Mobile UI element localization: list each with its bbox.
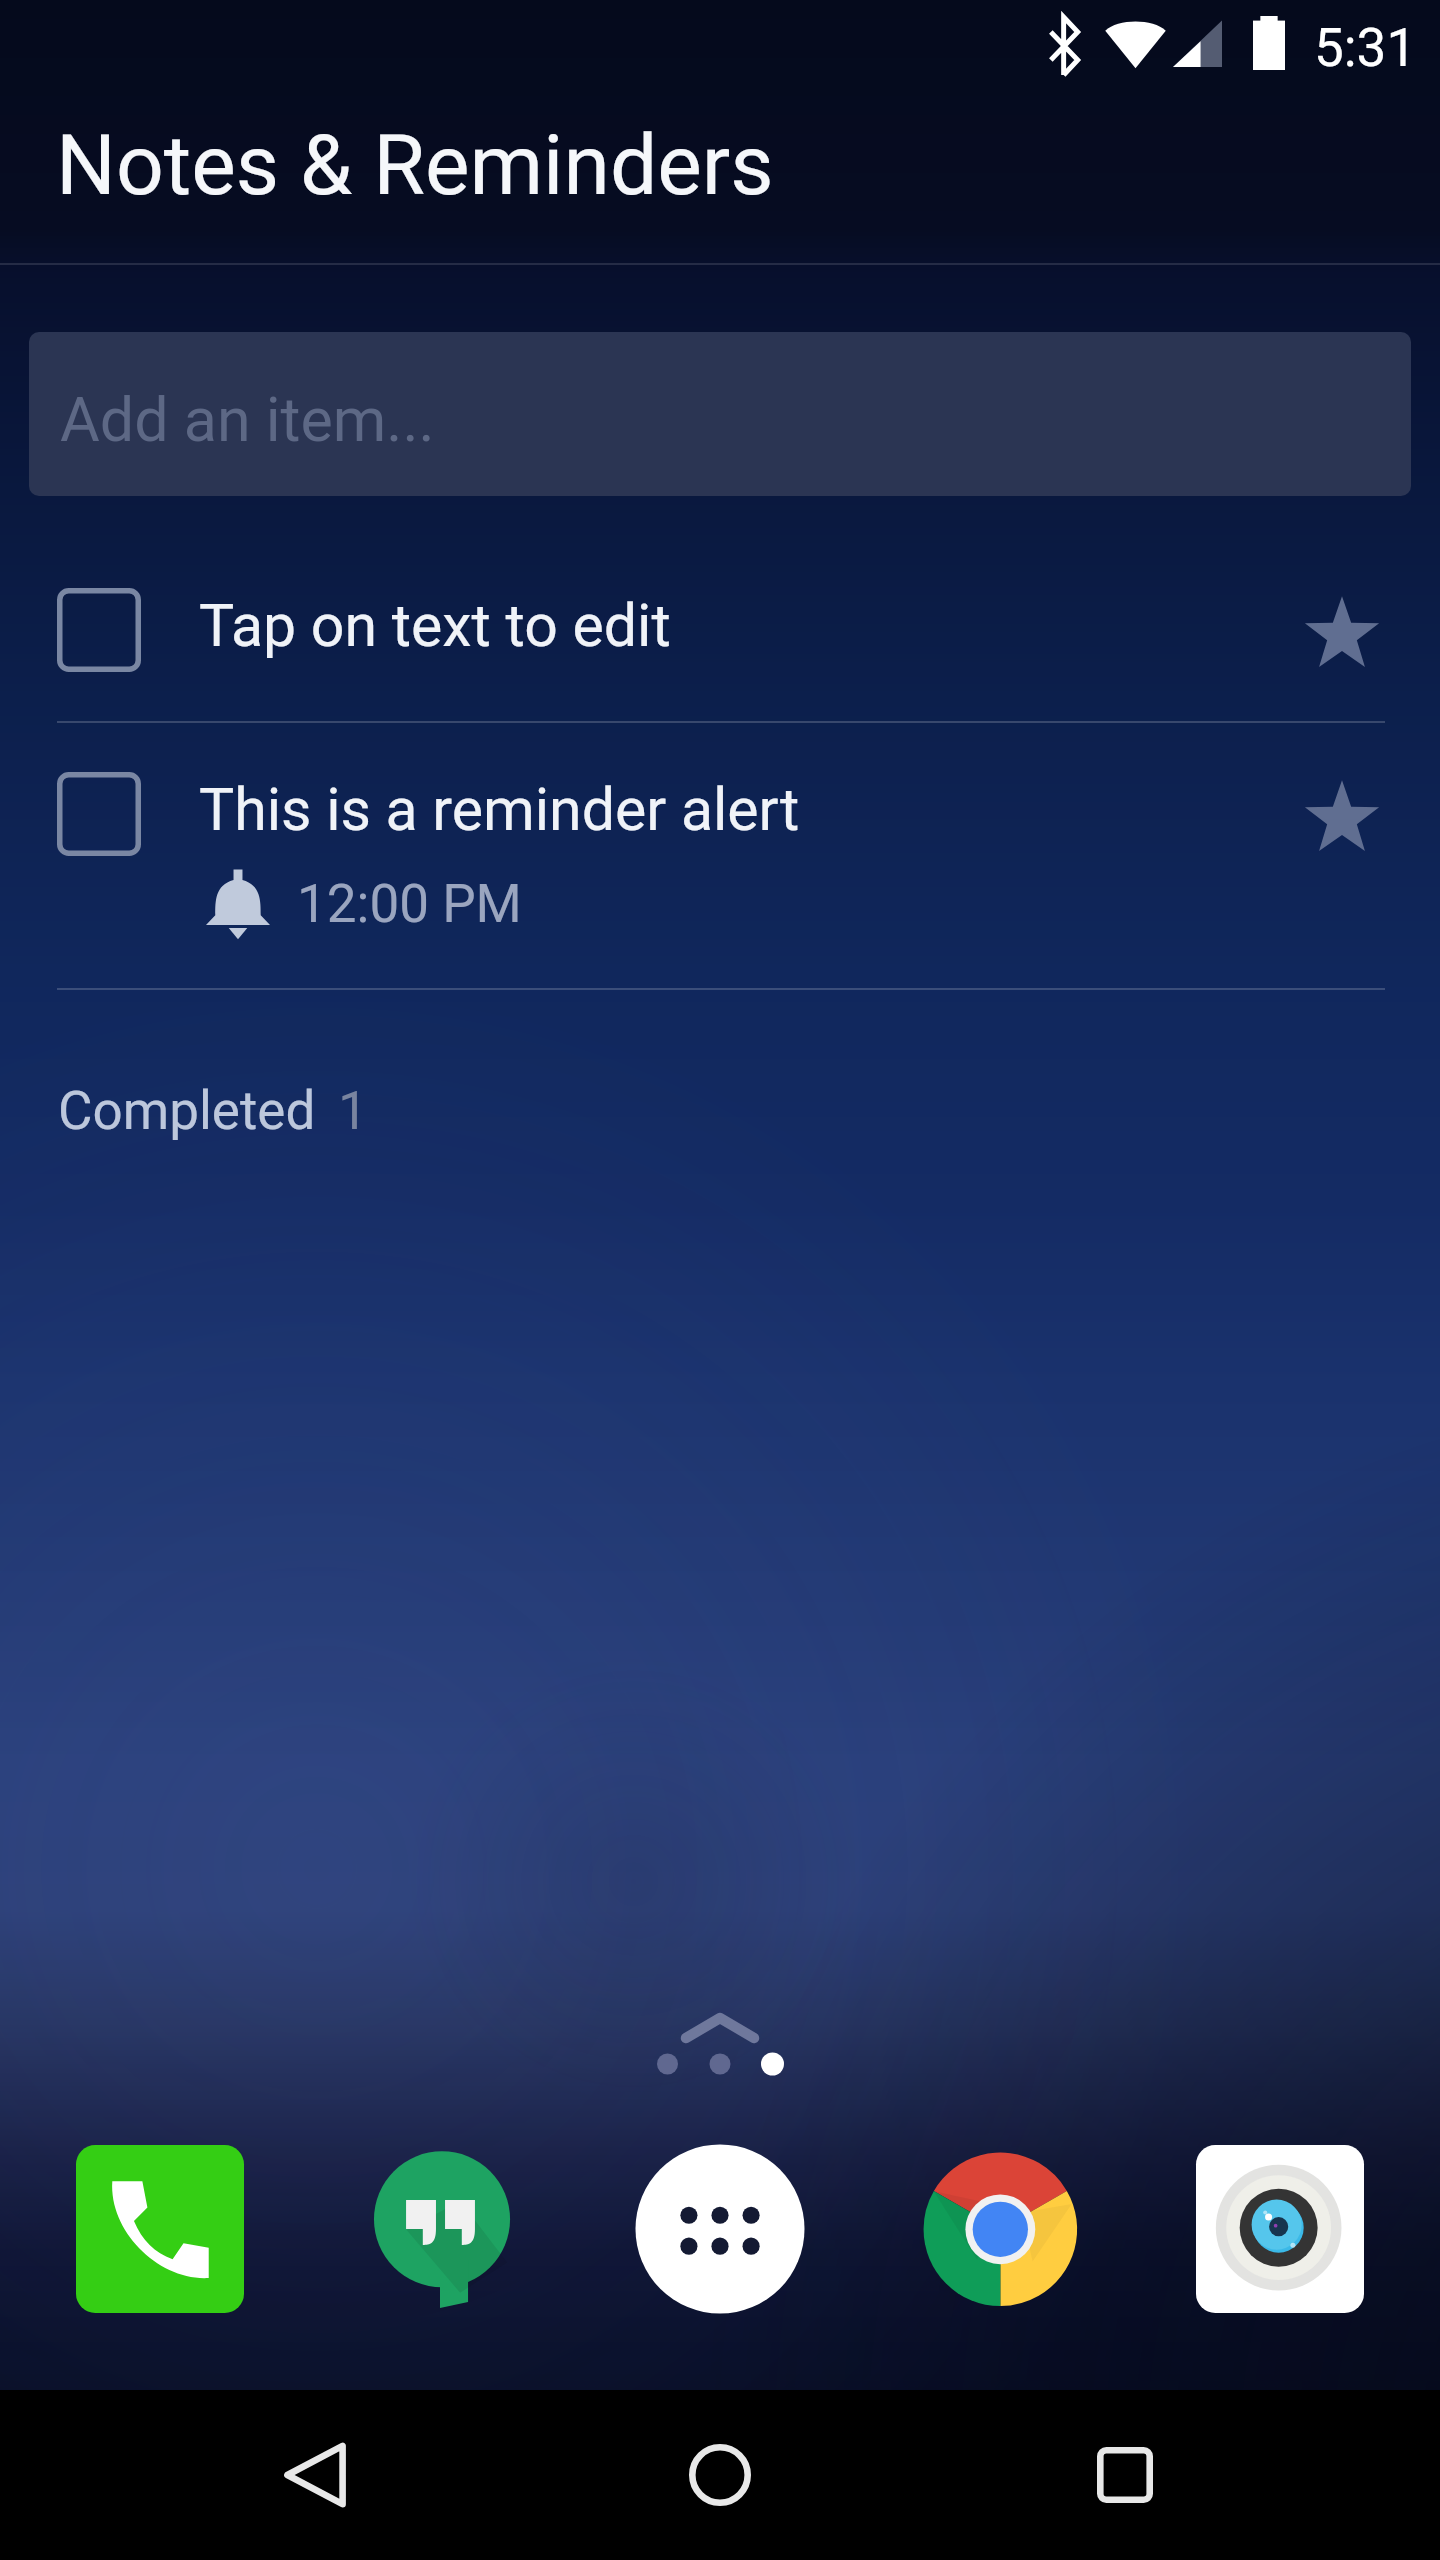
button[interactable]: Tap on text to edit <box>0 550 1440 683</box>
button[interactable]: Camera <box>1196 2145 1364 2313</box>
staticText: Completed <box>58 1080 316 1142</box>
button[interactable]: Phone <box>76 2145 244 2313</box>
staticText: 12:00 PM <box>297 873 522 935</box>
button[interactable]: Hangouts <box>356 2145 524 2313</box>
staticText: Tap on text to edit <box>199 591 671 660</box>
staticText: 5:31 <box>1314 17 1417 79</box>
staticText: This is a reminder alert <box>199 775 800 844</box>
button[interactable]: Star <box>1292 767 1392 867</box>
button[interactable]: All apps <box>636 2145 804 2313</box>
button[interactable]: Star <box>1292 583 1392 683</box>
button[interactable]: Recents <box>1035 2393 1215 2557</box>
button[interactable]: Open app drawer <box>650 2002 790 2046</box>
button[interactable]: Chrome <box>916 2145 1084 2313</box>
button[interactable]: This is a reminder alert <box>0 723 1440 940</box>
staticText: Notes & Reminders <box>56 116 774 214</box>
button[interactable]: Add an item... <box>29 332 1411 496</box>
button[interactable]: Back <box>225 2393 405 2557</box>
staticText: 1 <box>338 1080 368 1142</box>
staticText: Add an item... <box>60 384 435 455</box>
button[interactable]: Home <box>630 2393 810 2557</box>
